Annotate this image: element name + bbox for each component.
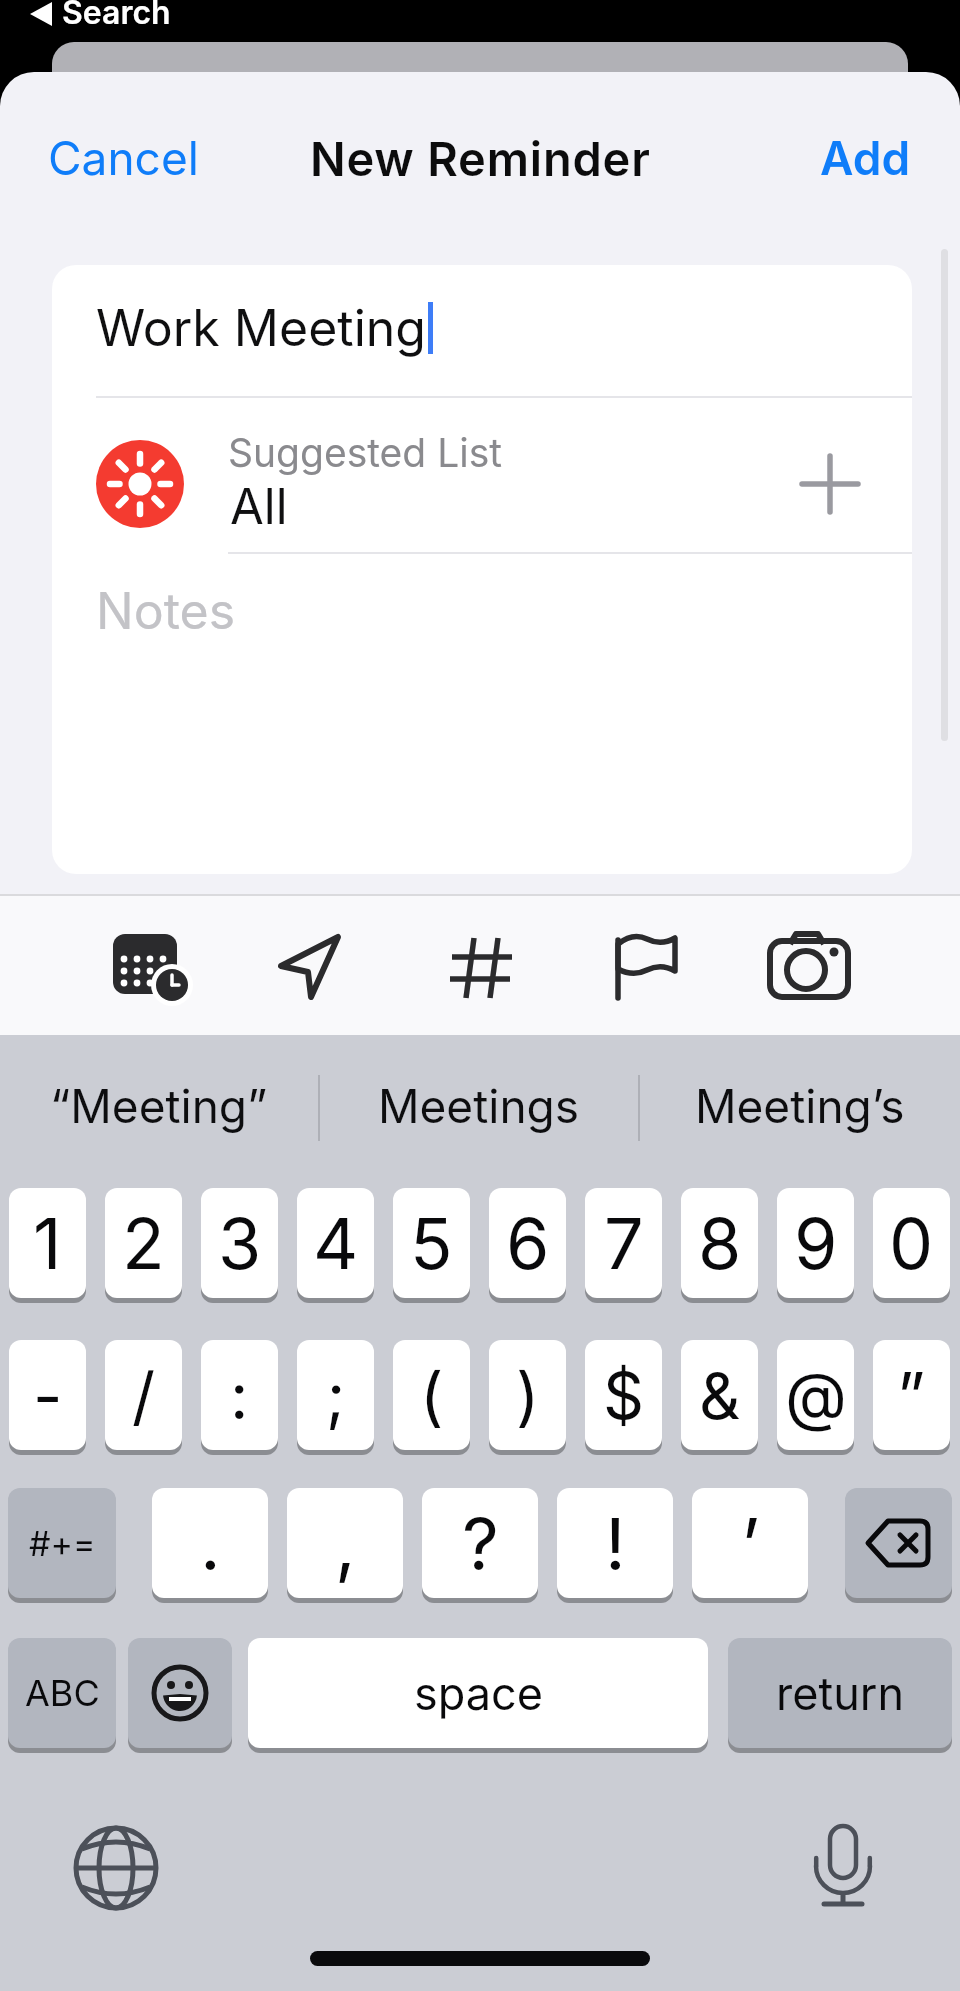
button[interactable]: 5: [393, 1188, 470, 1298]
staticText: 0: [889, 1201, 934, 1286]
staticText: ”: [897, 1357, 926, 1434]
staticText: ’: [741, 1500, 760, 1587]
button[interactable]: [66, 1818, 166, 1918]
button[interactable]: -: [9, 1340, 86, 1450]
staticText: 5: [410, 1201, 453, 1286]
staticText: 9: [794, 1201, 838, 1286]
button[interactable]: Meetings: [320, 1060, 638, 1152]
button[interactable]: 2: [105, 1188, 182, 1298]
button[interactable]: [440, 926, 520, 1006]
button[interactable]: [803, 1824, 883, 1914]
button[interactable]: ABC: [8, 1638, 116, 1748]
button[interactable]: 4: [297, 1188, 374, 1298]
button[interactable]: 8: [681, 1188, 758, 1298]
staticText: (: [420, 1357, 444, 1434]
button[interactable]: 7: [585, 1188, 662, 1298]
staticText: &: [699, 1357, 741, 1434]
staticText: return: [776, 1666, 904, 1720]
staticText: !: [605, 1500, 626, 1587]
button[interactable]: :: [201, 1340, 278, 1450]
button[interactable]: return: [728, 1638, 952, 1748]
staticText: Meetings: [378, 1078, 580, 1134]
staticText: Work Meeting: [96, 298, 426, 358]
button[interactable]: [106, 926, 190, 1006]
button[interactable]: 3: [201, 1188, 278, 1298]
button[interactable]: [128, 1638, 232, 1748]
button[interactable]: /: [105, 1340, 182, 1450]
button[interactable]: ,: [287, 1488, 403, 1598]
button[interactable]: ”: [873, 1340, 950, 1450]
button[interactable]: #+=: [8, 1488, 116, 1598]
button[interactable]: 6: [489, 1188, 566, 1298]
button[interactable]: [796, 450, 864, 518]
staticText: .: [200, 1500, 221, 1587]
button[interactable]: [273, 926, 353, 1006]
staticText: 1: [33, 1201, 62, 1286]
button[interactable]: Cancel: [30, 112, 181, 168]
staticText: $: [603, 1357, 645, 1434]
staticText: ;: [326, 1357, 346, 1434]
staticText: ABC: [25, 1671, 100, 1715]
staticText: -: [33, 1357, 63, 1434]
staticText: Notes: [96, 581, 236, 641]
button[interactable]: 0: [873, 1188, 950, 1298]
staticText: 2: [122, 1201, 165, 1286]
staticText: 7: [604, 1201, 644, 1286]
button[interactable]: !: [557, 1488, 673, 1598]
staticText: New Reminder: [310, 130, 651, 187]
button[interactable]: “Meeting”: [0, 1060, 318, 1152]
staticText: 3: [218, 1201, 262, 1286]
button[interactable]: Meeting’s: [640, 1060, 960, 1152]
button[interactable]: ): [489, 1340, 566, 1450]
button[interactable]: 1: [9, 1188, 86, 1298]
button[interactable]: @: [777, 1340, 854, 1450]
button[interactable]: ?: [422, 1488, 538, 1598]
staticText: 6: [506, 1201, 550, 1286]
staticText: 8: [698, 1201, 742, 1286]
staticText: /: [132, 1357, 156, 1434]
staticText: 4: [313, 1201, 359, 1286]
staticText: :: [230, 1357, 249, 1434]
button[interactable]: ’: [692, 1488, 808, 1598]
button[interactable]: .: [152, 1488, 268, 1598]
staticText: Cancel: [48, 130, 199, 186]
staticText: ?: [462, 1500, 499, 1587]
staticText: Suggested List: [228, 429, 503, 476]
button[interactable]: [605, 926, 685, 1006]
button[interactable]: [766, 926, 854, 1006]
staticText: #+=: [29, 1523, 96, 1564]
staticText: ): [516, 1357, 540, 1434]
staticText: Add: [820, 130, 911, 186]
staticText: @: [785, 1357, 847, 1434]
button[interactable]: $: [585, 1340, 662, 1450]
button[interactable]: (: [393, 1340, 470, 1450]
button[interactable]: space: [248, 1638, 708, 1748]
staticText: Search: [62, 0, 171, 32]
staticText: ,: [335, 1500, 356, 1587]
staticText: All: [230, 477, 288, 536]
button[interactable]: 9: [777, 1188, 854, 1298]
staticText: Meeting’s: [695, 1078, 905, 1134]
staticText: space: [414, 1666, 543, 1720]
button[interactable]: &: [681, 1340, 758, 1450]
button[interactable]: ;: [297, 1340, 374, 1450]
staticText: “Meeting”: [50, 1078, 268, 1134]
button[interactable]: [845, 1488, 952, 1598]
button[interactable]: Add: [800, 112, 891, 168]
